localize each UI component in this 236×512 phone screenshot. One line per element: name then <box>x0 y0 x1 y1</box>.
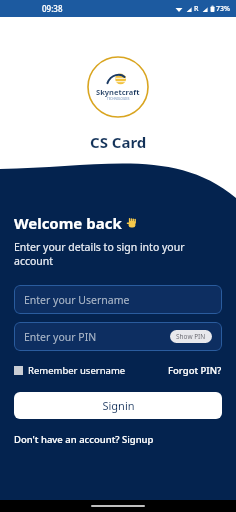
staticText: 09:38 <box>42 3 63 14</box>
button[interactable]: Show PIN <box>170 330 212 343</box>
staticText: Signin <box>102 398 135 413</box>
staticText: Enter your Username <box>24 293 130 307</box>
staticText: 73% <box>216 4 230 14</box>
staticText: Skynetcraft <box>96 87 140 97</box>
staticText: CS Card <box>90 132 147 152</box>
staticText: Enter your PIN <box>24 330 97 344</box>
button[interactable]: Remember username <box>14 364 126 377</box>
button[interactable]: Enter your PIN <box>14 322 222 351</box>
button[interactable]: Signin <box>14 392 222 419</box>
staticText: Forgot PIN? <box>168 364 222 377</box>
button[interactable]: Don't have an account? Signup <box>14 433 154 446</box>
staticText: Enter your details to sign into your acc… <box>14 240 222 268</box>
staticText: TECHNOLOGIES <box>107 97 130 101</box>
staticText: R <box>194 4 199 14</box>
staticText: Remember username <box>28 364 126 377</box>
staticText: Show PIN <box>176 332 206 341</box>
staticText: Don't have an account? Signup <box>14 433 154 446</box>
button[interactable]: Enter your Username <box>14 285 222 314</box>
button[interactable]: Forgot PIN? <box>168 364 222 377</box>
staticText: Welcome back <box>14 213 122 233</box>
